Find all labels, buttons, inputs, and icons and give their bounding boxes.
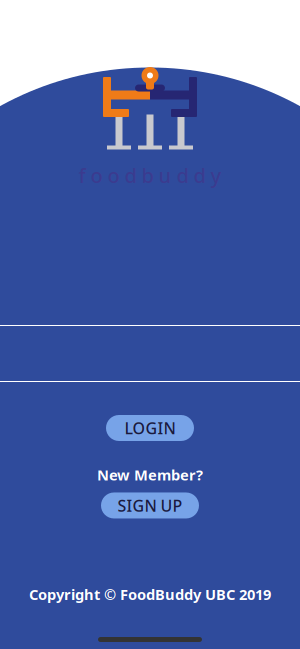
- button[interactable]: SIGN UP: [101, 492, 199, 518]
- button[interactable]: Password: [0, 342, 300, 382]
- button[interactable]: LOGIN: [106, 415, 194, 441]
- staticText: LOGIN: [124, 417, 175, 439]
- staticText: SIGN UP: [117, 495, 182, 516]
- staticText: f o o d b u d d y: [78, 162, 221, 189]
- staticText: New Member?: [97, 465, 203, 484]
- staticText: Copyright © FoodBuddy UBC 2019: [29, 584, 271, 604]
- button[interactable]: Email id: [0, 286, 300, 326]
